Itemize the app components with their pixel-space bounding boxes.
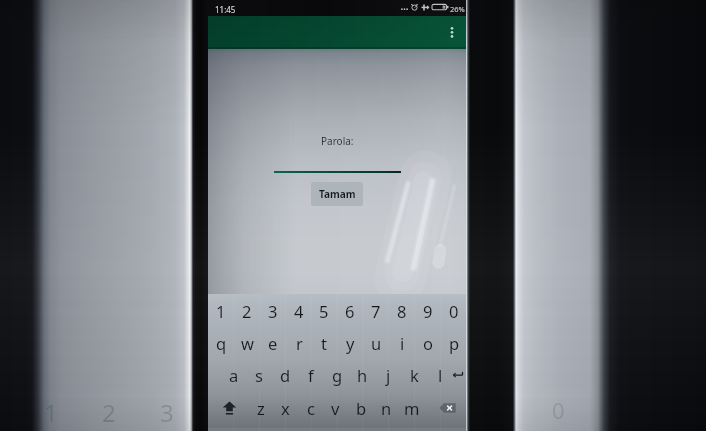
button[interactable]: m: [399, 392, 424, 424]
button[interactable]: Tamam: [311, 182, 363, 206]
staticText: 2: [102, 396, 116, 429]
staticText: Parola:: [321, 134, 354, 148]
button[interactable]: c: [298, 392, 323, 424]
staticText: z: [257, 397, 265, 419]
button[interactable]: i: [389, 327, 415, 359]
button[interactable]: r: [286, 327, 312, 359]
staticText: 26%: [450, 4, 465, 14]
staticText: Tamam: [319, 187, 356, 201]
button[interactable]: 0: [441, 295, 467, 327]
button[interactable]: d: [272, 359, 298, 391]
staticText: y: [346, 332, 355, 354]
staticText: 6: [345, 300, 355, 322]
button[interactable]: h: [349, 359, 375, 391]
staticText: l: [438, 364, 443, 386]
staticText: q: [216, 332, 227, 354]
staticText: d: [280, 364, 291, 386]
button[interactable]: Enter: [445, 359, 471, 391]
button[interactable]: More options: [442, 19, 462, 46]
staticText: 8: [397, 300, 407, 322]
staticText: g: [332, 364, 343, 386]
staticText: w: [241, 332, 254, 354]
staticText: a: [229, 364, 239, 386]
staticText: 7: [371, 300, 381, 322]
staticText: b: [356, 397, 367, 419]
button[interactable]: t: [311, 327, 337, 359]
button[interactable]: u: [363, 327, 389, 359]
staticText: 2: [242, 300, 252, 322]
button[interactable]: e: [260, 327, 286, 359]
staticText: r: [296, 332, 303, 354]
button[interactable]: 4: [286, 295, 312, 327]
staticText: p: [449, 332, 460, 354]
button[interactable]: 5: [311, 295, 337, 327]
staticText: 0: [552, 395, 565, 425]
staticText: 0: [449, 300, 459, 322]
staticText: h: [357, 364, 368, 386]
staticText: 3: [268, 300, 278, 322]
staticText: x: [281, 397, 290, 419]
button[interactable]: Shift: [216, 392, 242, 424]
staticText: n: [381, 397, 392, 419]
button[interactable]: 7: [363, 295, 389, 327]
button[interactable]: z: [248, 392, 273, 424]
staticText: s: [255, 364, 263, 386]
staticText: 3: [160, 396, 174, 429]
button[interactable]: l: [427, 359, 453, 391]
button[interactable]: n: [374, 392, 399, 424]
button[interactable]: p: [441, 327, 467, 359]
button[interactable]: w: [234, 327, 260, 359]
button[interactable]: o: [415, 327, 441, 359]
staticText: u: [371, 332, 382, 354]
staticText: 5: [319, 300, 329, 322]
staticText: m: [404, 397, 420, 419]
button[interactable]: s: [246, 359, 272, 391]
staticText: c: [307, 397, 315, 419]
button[interactable]: v: [323, 392, 348, 424]
staticText: 9: [423, 300, 433, 322]
staticText: k: [410, 364, 419, 386]
button[interactable]: a: [221, 359, 247, 391]
button[interactable]: 2: [234, 295, 260, 327]
button[interactable]: 6: [337, 295, 363, 327]
staticText: 11:45: [215, 4, 236, 15]
staticText: 1: [216, 300, 226, 322]
staticText: v: [331, 397, 340, 419]
button[interactable]: Backspace: [434, 392, 460, 424]
button[interactable]: y: [337, 327, 363, 359]
button[interactable]: j: [375, 359, 401, 391]
button[interactable]: x: [273, 392, 298, 424]
button[interactable]: g: [324, 359, 350, 391]
staticText: i: [400, 332, 405, 354]
staticText: f: [308, 364, 314, 386]
button[interactable]: 1: [208, 295, 234, 327]
staticText: 1: [44, 396, 58, 429]
staticText: 4: [294, 300, 304, 322]
button[interactable]: b: [349, 392, 374, 424]
button[interactable]: 8: [389, 295, 415, 327]
button[interactable]: 9: [415, 295, 441, 327]
button[interactable]: k: [401, 359, 427, 391]
button[interactable]: q: [208, 327, 234, 359]
staticText: e: [268, 332, 278, 354]
button[interactable]: 3: [260, 295, 286, 327]
staticText: o: [423, 332, 433, 354]
staticText: t: [321, 332, 327, 354]
staticText: j: [386, 364, 391, 386]
button[interactable]: f: [298, 359, 324, 391]
